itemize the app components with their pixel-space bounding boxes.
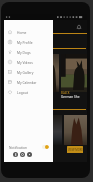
button[interactable] — [44, 115, 62, 145]
staticText: VIEW MORE — [68, 148, 83, 152]
staticText: Breeds — [6, 49, 20, 55]
staticText: My Calendar — [17, 80, 37, 84]
button[interactable] — [61, 54, 87, 92]
button[interactable]: YouTube — [27, 152, 32, 157]
button[interactable] — [33, 54, 59, 92]
button[interactable]: My Calendar — [4, 77, 53, 87]
button[interactable]: Facebook — [13, 152, 18, 157]
button[interactable] — [64, 115, 87, 145]
staticText: Home — [17, 30, 27, 34]
button[interactable]: My Videos — [4, 57, 53, 67]
button[interactable] — [5, 54, 31, 92]
button[interactable]: Notification toggle — [42, 145, 49, 149]
staticText: My Videos — [17, 60, 33, 64]
button[interactable]: My Dogs — [4, 47, 53, 57]
button[interactable]: Home — [4, 27, 53, 37]
button[interactable]: Instagram — [20, 152, 25, 157]
staticText: Logout — [17, 90, 28, 94]
button[interactable]: VIEW MORE — [67, 146, 83, 153]
staticText: German She — [61, 95, 80, 99]
staticText: BLACK — [5, 91, 14, 95]
button[interactable]: Logout — [4, 87, 53, 97]
staticText: Notification — [9, 145, 28, 149]
staticText: BLACK — [61, 91, 70, 95]
staticText: My Profile — [17, 40, 33, 44]
staticText: My Gallery — [17, 70, 34, 74]
button[interactable]: Notifications — [76, 24, 82, 30]
button[interactable]: My Gallery — [4, 67, 53, 77]
staticText: My Dogs — [17, 50, 31, 54]
button[interactable]: My Profile — [4, 37, 53, 47]
